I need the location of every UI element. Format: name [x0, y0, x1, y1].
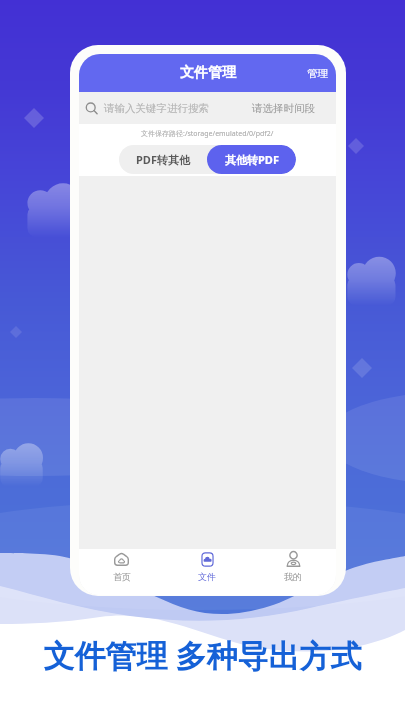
staticText: 文件管理 多种导出方式	[43, 634, 362, 676]
button[interactable]: Files	[164, 549, 250, 595]
staticText: 我的	[284, 571, 302, 582]
other: Profile	[285, 551, 302, 568]
button[interactable]: 其他转PDF	[207, 145, 296, 174]
staticText: 管理	[307, 67, 328, 80]
staticText: 首页	[113, 571, 131, 582]
button[interactable]: 请选择时间段	[246, 97, 336, 120]
button[interactable]: PDF转其他	[119, 145, 207, 174]
button[interactable]: 请输入关键字进行搜索	[79, 102, 246, 115]
staticText: 文件保存路径:/storage/emulated/0/pdf2/	[141, 129, 274, 139]
button[interactable]: Profile	[250, 549, 336, 595]
other: Files	[199, 551, 216, 568]
staticText: 其他转PDF	[225, 152, 279, 167]
staticText: 请选择时间段	[252, 102, 315, 115]
button[interactable]: 管理	[299, 61, 336, 86]
staticText: 文件管理	[180, 64, 236, 82]
staticText: PDF转其他	[136, 152, 190, 167]
other: Home	[113, 551, 130, 568]
staticText: 请输入关键字进行搜索	[104, 102, 209, 115]
button[interactable]: Home	[79, 549, 164, 595]
staticText: 文件	[198, 571, 216, 582]
